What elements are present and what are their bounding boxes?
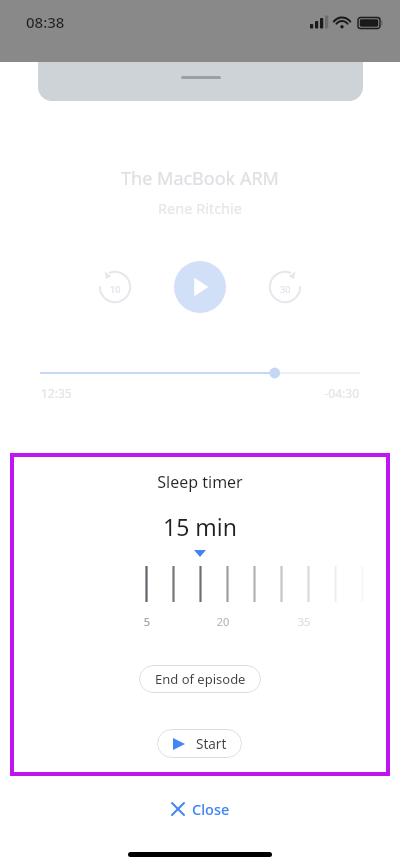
staticText: 35 <box>293 614 315 629</box>
staticText: 12:35 <box>41 385 72 401</box>
button[interactable]: Replay 10 seconds <box>92 264 138 310</box>
staticText: -04:30 <box>259 385 359 401</box>
button[interactable]: Play <box>174 261 226 313</box>
staticText: 20 <box>212 614 234 629</box>
staticText: The MacBook ARM <box>0 166 400 191</box>
staticText: 30 <box>280 283 291 295</box>
button[interactable]: End of episode <box>139 665 261 693</box>
staticText: Close <box>192 799 230 819</box>
button[interactable]: Forward 30 seconds <box>262 264 308 310</box>
button[interactable]: Start <box>157 729 242 758</box>
button[interactable]: Seek bar <box>41 366 359 380</box>
staticText: Rene Ritchie <box>0 198 400 218</box>
button[interactable]: Close <box>0 795 400 823</box>
staticText: End of episode <box>155 670 246 688</box>
staticText: 10 <box>110 283 121 295</box>
staticText: Sleep timer <box>0 471 400 493</box>
staticText: Start <box>196 735 227 753</box>
staticText: 15 min <box>0 511 400 542</box>
staticText: 5 <box>139 614 155 629</box>
staticText: 08:38 <box>26 12 65 32</box>
